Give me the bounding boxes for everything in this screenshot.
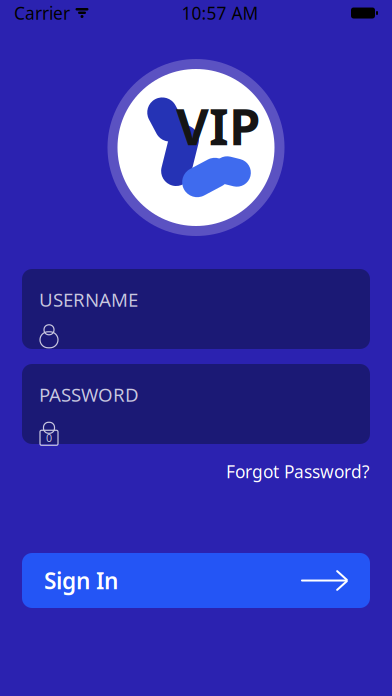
button[interactable]: PASSWORD — [22, 364, 370, 444]
staticText: 0 — [46, 431, 52, 445]
button[interactable]: Sign In — [22, 553, 370, 608]
staticText: Forgot Password? — [226, 460, 370, 483]
staticText: VIP — [176, 92, 260, 159]
button[interactable]: Forgot Password? — [226, 454, 370, 489]
staticText: USERNAME — [39, 287, 138, 312]
staticText: PASSWORD — [39, 382, 139, 407]
staticText: 10:57 AM — [181, 1, 258, 24]
button[interactable]: USERNAME — [22, 269, 370, 349]
staticText: Sign In — [44, 565, 118, 595]
staticText: Carrier — [14, 1, 70, 24]
